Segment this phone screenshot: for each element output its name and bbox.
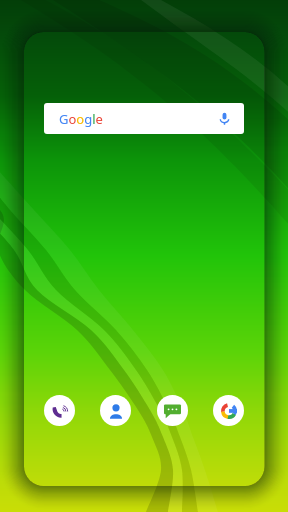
button[interactable]: Phone bbox=[44, 395, 75, 426]
button[interactable]: Contacts bbox=[100, 395, 131, 426]
button[interactable]: Google bbox=[44, 103, 244, 134]
button[interactable]: Google Search bbox=[213, 395, 244, 426]
staticText: Google bbox=[59, 110, 103, 128]
button[interactable]: Messages bbox=[157, 395, 188, 426]
